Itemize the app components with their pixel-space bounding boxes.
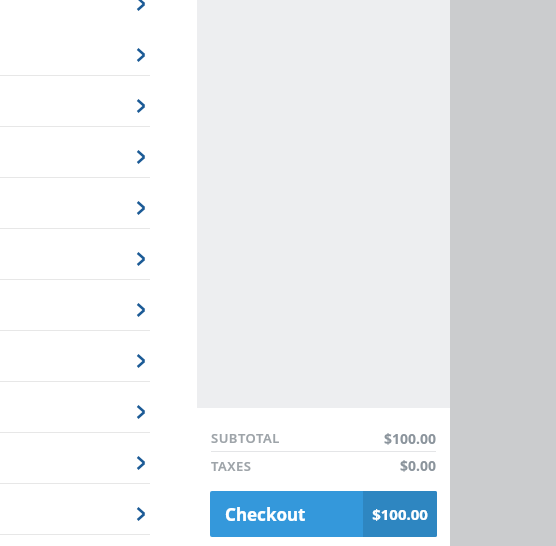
button[interactable]: Open <box>129 247 153 271</box>
staticText: TAXES <box>211 457 252 475</box>
button[interactable]: Open <box>129 349 153 373</box>
button[interactable]: Checkout <box>210 491 437 537</box>
staticText: Checkout <box>225 503 306 526</box>
staticText: $100.00 <box>384 429 436 448</box>
button[interactable]: Open <box>129 0 153 16</box>
staticText: $0.00 <box>400 456 436 475</box>
button[interactable]: Open <box>129 400 153 424</box>
button[interactable]: Open <box>129 502 153 526</box>
staticText: $100.00 <box>372 504 428 524</box>
button[interactable]: Open <box>129 196 153 220</box>
staticText: SUBTOTAL <box>211 429 280 447</box>
button[interactable]: Open <box>129 145 153 169</box>
button[interactable]: Open <box>129 94 153 118</box>
button[interactable]: Open <box>129 43 153 67</box>
button[interactable]: Open <box>129 451 153 475</box>
button[interactable]: Open <box>129 298 153 322</box>
